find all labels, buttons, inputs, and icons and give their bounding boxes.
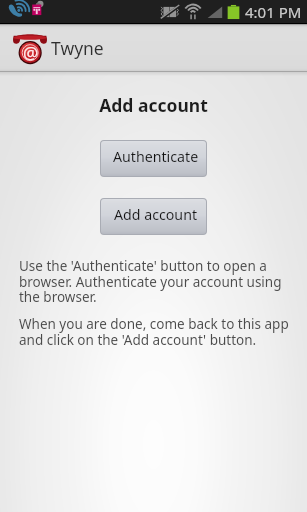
staticText: @ [23, 41, 39, 64]
staticText: When you are done, come back to this app… [19, 315, 295, 349]
staticText: Add account [114, 205, 198, 224]
button[interactable]: Authenticate [101, 141, 206, 176]
staticText: Use the 'Authenticate' button to open a … [19, 257, 295, 306]
button[interactable]: Add account [101, 199, 206, 234]
staticText: Twyne [51, 36, 104, 60]
staticText: Authenticate [113, 147, 199, 166]
staticText: Add account [0, 93, 307, 117]
staticText: 4:01 PM [245, 2, 302, 22]
